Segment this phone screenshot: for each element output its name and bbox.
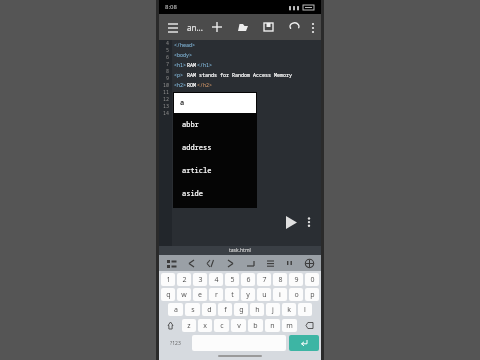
staticText: abbr [182, 120, 199, 130]
button[interactable]: y [241, 288, 255, 301]
button[interactable]: Shift [161, 318, 180, 333]
button[interactable]: Play [281, 212, 301, 232]
button[interactable]: a [168, 303, 183, 316]
button[interactable]: 9 [289, 273, 303, 286]
staticText: <body> [174, 52, 193, 59]
button[interactable]: i [273, 288, 287, 301]
staticText: k [287, 305, 291, 315]
button[interactable]: p [305, 288, 319, 301]
button[interactable]: 4 [209, 273, 223, 286]
button[interactable]: k [282, 303, 296, 316]
button[interactable]: d [202, 303, 216, 316]
button[interactable]: s [185, 303, 200, 316]
button[interactable]: 5 [225, 273, 239, 286]
button[interactable]: aside [174, 182, 256, 205]
button[interactable]: z [182, 319, 196, 332]
button[interactable]: b [248, 319, 263, 332]
staticText: b [253, 321, 258, 331]
button[interactable]: 1 [161, 273, 175, 286]
button[interactable]: address [174, 136, 256, 159]
button[interactable]: New file [207, 17, 227, 37]
button[interactable]: t [225, 288, 239, 301]
staticText: 7 [166, 61, 170, 68]
button[interactable]: 0 [305, 273, 319, 286]
button[interactable]: c [214, 319, 229, 332]
button[interactable]: article [174, 159, 256, 182]
staticText: a [174, 305, 178, 315]
button[interactable]: 7 [257, 273, 271, 286]
button[interactable]: Quote [281, 255, 297, 271]
staticText: 2 [182, 275, 187, 285]
staticText: v [237, 321, 241, 331]
staticText: task.html [229, 247, 251, 254]
button[interactable]: w [177, 288, 191, 301]
button[interactable]: Less than [183, 255, 199, 271]
staticText: RAM [187, 62, 197, 69]
button[interactable]: List [163, 255, 179, 271]
button[interactable]: u [257, 288, 271, 301]
staticText: h [255, 305, 260, 315]
staticText: i [279, 290, 281, 300]
staticText: <p> [174, 72, 184, 79]
button[interactable]: j [266, 303, 280, 316]
staticText: 8 [166, 68, 170, 75]
button[interactable]: Close tag [202, 255, 218, 271]
button[interactable]: Menu [163, 17, 183, 37]
staticText: 8:08 [165, 3, 177, 11]
button[interactable]: Enter [289, 335, 319, 351]
button[interactable]: an... [183, 22, 207, 33]
button[interactable]: Move [301, 255, 317, 271]
staticText: n [270, 321, 275, 331]
button[interactable]: v [231, 319, 246, 332]
staticText: 11 [163, 89, 170, 96]
button[interactable]: Backspace [299, 318, 319, 333]
button[interactable]: More [301, 214, 317, 230]
button[interactable]: q [161, 288, 175, 301]
button[interactable]: g [234, 303, 248, 316]
button[interactable]: h [250, 303, 264, 316]
button[interactable]: o [289, 288, 303, 301]
button[interactable]: Save [259, 17, 279, 37]
button[interactable]: ?123 [161, 335, 189, 351]
staticText: </h1> [197, 62, 213, 69]
button[interactable]: n [265, 319, 280, 332]
button[interactable]: x [198, 319, 212, 332]
staticText: address [182, 143, 212, 153]
button[interactable]: f [218, 303, 232, 316]
staticText: ROM [187, 82, 197, 89]
button[interactable]: Indent [242, 255, 258, 271]
staticText: w [181, 290, 187, 300]
staticText: d [207, 305, 212, 315]
staticText: x [203, 321, 207, 331]
button[interactable]: l [298, 303, 312, 316]
staticText: m [286, 321, 293, 331]
button[interactable]: 2 [177, 273, 191, 286]
staticText: <h1> [174, 62, 187, 69]
staticText: </h2> [197, 82, 213, 89]
staticText: p [310, 290, 315, 300]
staticText: 0 [310, 275, 315, 285]
button[interactable]: Greater than [222, 255, 238, 271]
button[interactable]: e [193, 288, 207, 301]
button[interactable]: More options [309, 17, 317, 37]
staticText: 12 [163, 96, 170, 103]
staticText: 4 [214, 275, 219, 285]
button[interactable]: Undo [285, 17, 305, 37]
staticText: 6 [246, 275, 251, 285]
staticText: z [187, 321, 191, 331]
staticText: j [272, 305, 274, 315]
button[interactable]: 6 [241, 273, 255, 286]
button[interactable]: r [209, 288, 223, 301]
staticText: 3 [198, 275, 203, 285]
button[interactable]: m [282, 319, 297, 332]
staticText: 6 [166, 54, 170, 61]
button[interactable]: Align [262, 255, 278, 271]
staticText: 4 [166, 40, 170, 47]
staticText: s [191, 305, 195, 315]
button[interactable]: 3 [193, 273, 207, 286]
button[interactable]: 8 [273, 273, 287, 286]
button[interactable]: Open folder [233, 17, 253, 37]
button[interactable]: abbr [174, 113, 256, 136]
staticText: </head> [174, 42, 196, 49]
